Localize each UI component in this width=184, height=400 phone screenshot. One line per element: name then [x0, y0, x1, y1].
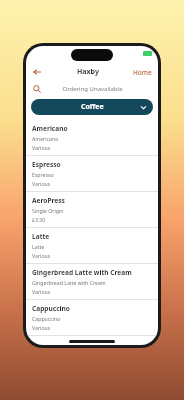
- button[interactable]: Espresso: [26, 156, 158, 191]
- button[interactable]: Cafetiere: [26, 336, 158, 337]
- staticText: £3.50: [32, 216, 46, 223]
- button[interactable]: Gingerbread Latte with Cream: [26, 264, 158, 299]
- staticText: Various: [32, 180, 51, 187]
- staticText: Latte: [32, 232, 50, 241]
- button[interactable]: Latte: [26, 228, 158, 263]
- staticText: Single Origin: [32, 207, 64, 214]
- button[interactable]: Back: [31, 66, 43, 78]
- button[interactable]: Home: [132, 68, 153, 77]
- staticText: Various: [32, 144, 51, 151]
- staticText: Various: [32, 324, 51, 331]
- staticText: Home: [133, 68, 152, 77]
- staticText: Cappuccino: [32, 315, 61, 322]
- button[interactable]: Search: [31, 83, 43, 95]
- staticText: Various: [32, 288, 51, 295]
- staticText: Haxby: [77, 67, 99, 77]
- staticText: Cappuccino: [32, 304, 70, 313]
- button[interactable]: Americano: [26, 120, 158, 155]
- staticText: Ordering Unavailable: [62, 85, 123, 93]
- staticText: AeroPress: [32, 196, 65, 205]
- button[interactable]: Cappuccino: [26, 300, 158, 335]
- staticText: Americano: [32, 135, 59, 142]
- button[interactable]: AeroPress: [26, 192, 158, 227]
- staticText: Latte: [32, 243, 45, 250]
- staticText: Espresso: [32, 160, 61, 169]
- staticText: Gingerbread Latte with Cream: [32, 268, 132, 277]
- staticText: Coffee: [81, 102, 104, 112]
- staticText: Gingerbread Latte with Cream: [32, 279, 106, 286]
- button[interactable]: Coffee: [31, 99, 153, 115]
- staticText: Americano: [32, 124, 68, 133]
- staticText: Various: [32, 252, 51, 259]
- staticText: Espresso: [32, 171, 54, 178]
